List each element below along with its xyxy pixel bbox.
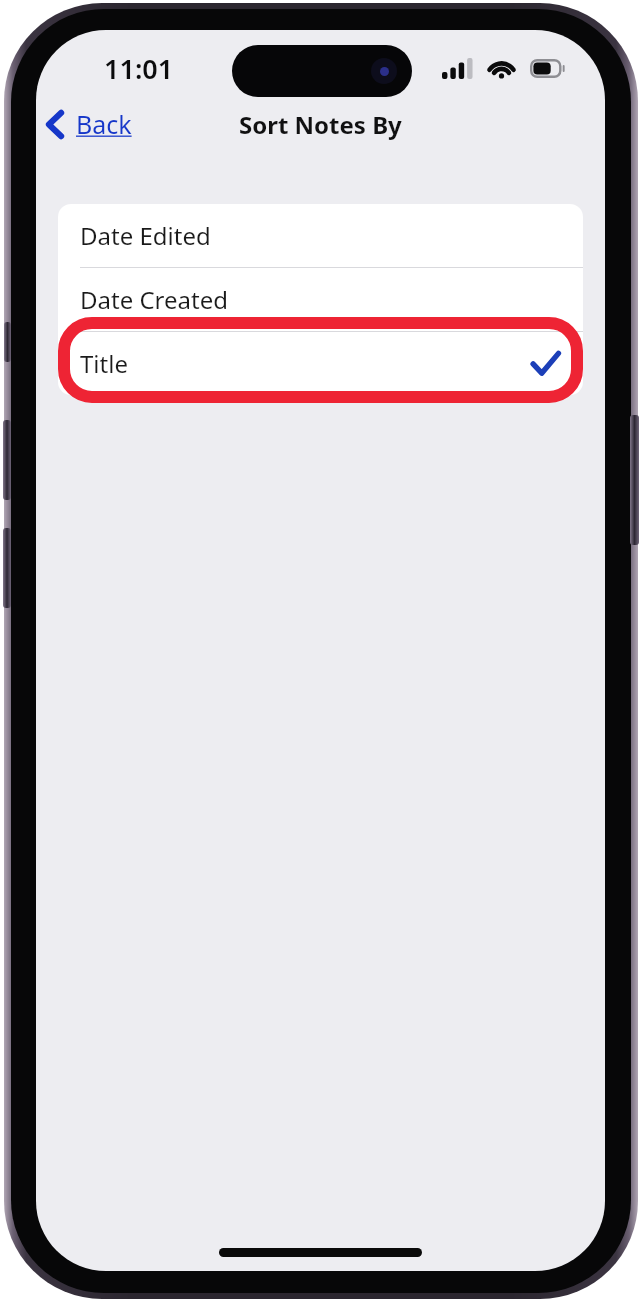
staticText: Title bbox=[80, 347, 128, 380]
button[interactable]: Date Created bbox=[58, 268, 583, 331]
button[interactable]: Title bbox=[58, 332, 583, 395]
other: Selected bbox=[532, 352, 559, 375]
staticText: Date Created bbox=[80, 283, 228, 316]
staticText: 11:01 bbox=[104, 50, 174, 87]
staticText: Date Edited bbox=[80, 219, 211, 252]
button[interactable]: Back bbox=[36, 101, 144, 147]
button[interactable]: Date Edited bbox=[58, 204, 583, 267]
staticText: Back bbox=[76, 107, 132, 141]
staticText: Sort Notes By bbox=[239, 108, 402, 141]
